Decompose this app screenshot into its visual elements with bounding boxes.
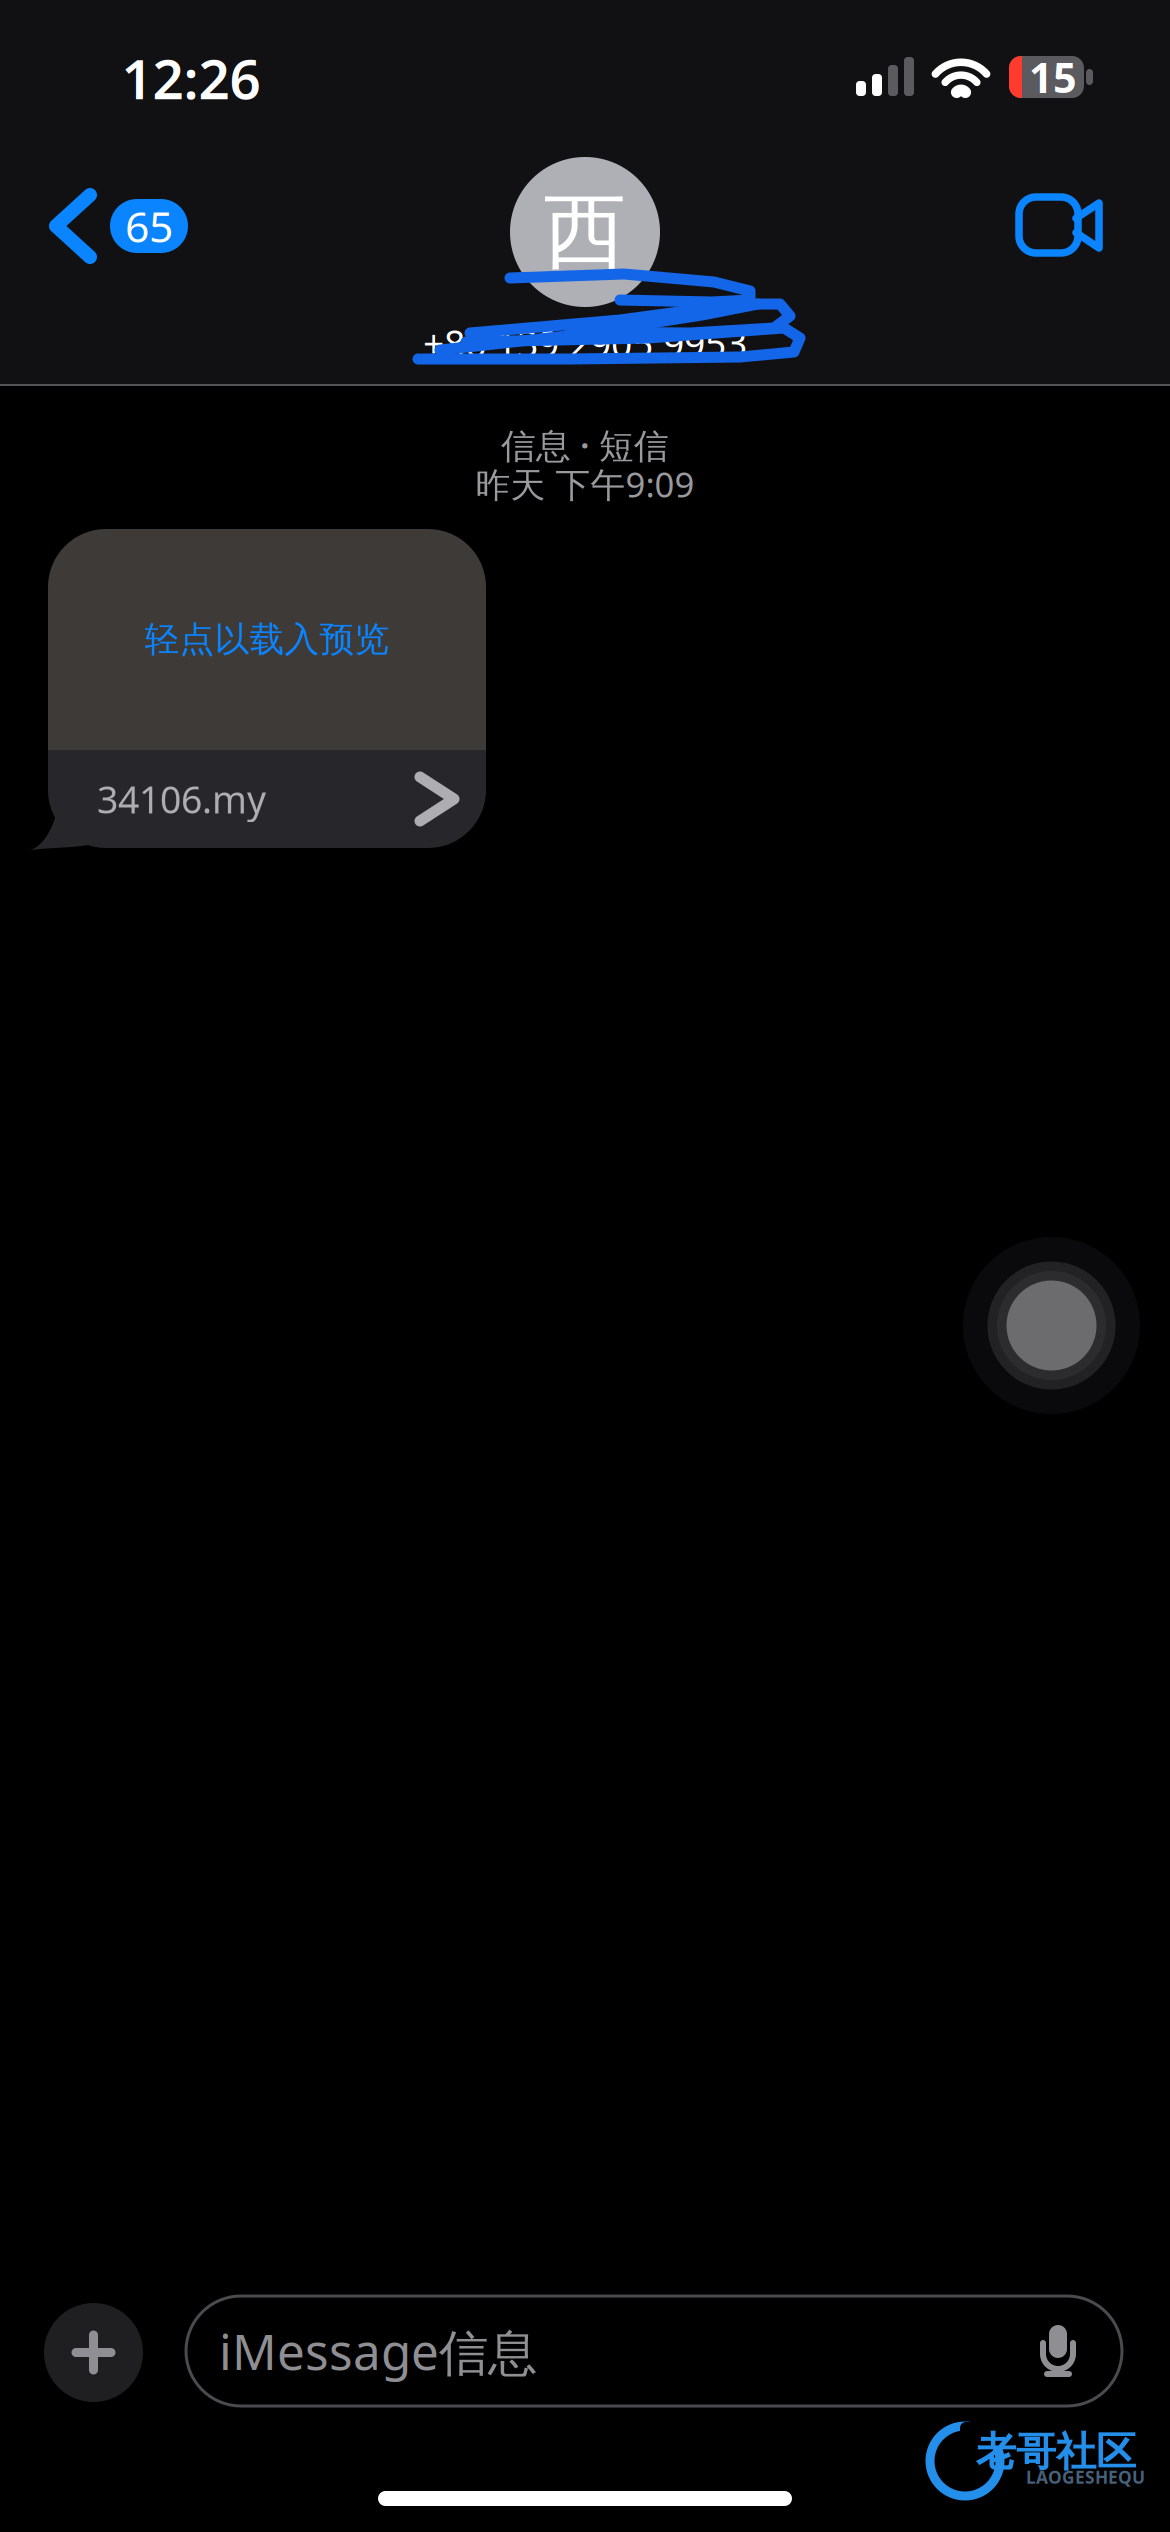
staticText: 信息 · 短信: [501, 422, 669, 468]
button[interactable]: FaceTime video call: [1019, 189, 1129, 299]
staticText: 15: [1029, 50, 1077, 104]
button[interactable]: 65: [48, 171, 230, 281]
staticText: 西: [543, 181, 626, 283]
staticText: 12:26: [121, 42, 260, 114]
staticText: 65: [125, 198, 173, 254]
staticText: 轻点以载入预览: [144, 618, 389, 661]
staticText: 昨天 下午9:09: [475, 461, 694, 507]
staticText: 老哥社区: [976, 2427, 1136, 2476]
staticText: +86 139 2905 9953: [423, 318, 747, 368]
button[interactable]: AssistiveTouch: [963, 1237, 1140, 1414]
staticText: 34106.my: [97, 774, 266, 824]
staticText: LAOGESHEQU: [1026, 2465, 1145, 2488]
button[interactable]: Add attachment: [44, 2303, 143, 2402]
staticText: iMessage信息: [219, 2318, 537, 2384]
button[interactable]: iMessage信息: [186, 2296, 1122, 2406]
button[interactable]: 轻点以载入预览: [48, 529, 486, 848]
